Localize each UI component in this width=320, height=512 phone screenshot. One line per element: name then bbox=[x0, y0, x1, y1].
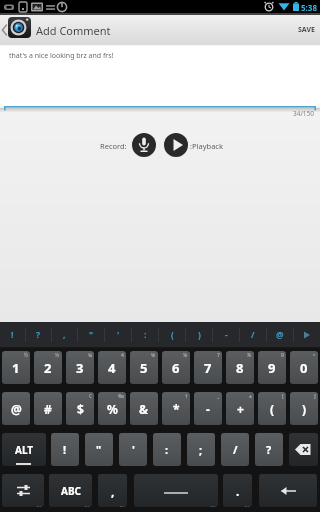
staticText: :Playback bbox=[190, 141, 223, 151]
staticText: - bbox=[206, 401, 210, 417]
staticText: ... bbox=[37, 502, 42, 507]
button[interactable]: @ bbox=[267, 322, 293, 348]
button[interactable]: * bbox=[162, 392, 190, 425]
staticText: + bbox=[237, 401, 244, 417]
button[interactable]: " bbox=[85, 433, 113, 466]
staticText: : bbox=[144, 329, 147, 341]
staticText: ? bbox=[266, 442, 272, 457]
staticText: ! bbox=[11, 329, 14, 341]
button[interactable]: - bbox=[194, 392, 222, 425]
button[interactable]: ? bbox=[255, 433, 283, 466]
button[interactable]: SAVE bbox=[298, 15, 315, 45]
button[interactable]: ... bbox=[2, 474, 44, 507]
staticText: & bbox=[139, 401, 149, 417]
staticText: 0 bbox=[300, 359, 308, 377]
staticText: ... bbox=[85, 502, 90, 507]
button[interactable]: 3 bbox=[66, 351, 94, 384]
button[interactable]: ' bbox=[119, 433, 147, 466]
button[interactable] bbox=[259, 474, 317, 507]
button[interactable]: 6 bbox=[162, 351, 190, 384]
staticText: ) bbox=[198, 329, 201, 341]
button[interactable]: 7 bbox=[194, 351, 222, 384]
button[interactable]: ABC bbox=[49, 474, 92, 507]
staticText: [ bbox=[282, 393, 284, 400]
button[interactable]: that's a nice looking brz and frs! bbox=[0, 46, 320, 106]
button[interactable]: . bbox=[223, 474, 252, 507]
button[interactable]: 2 bbox=[34, 351, 62, 384]
button[interactable]: ; bbox=[187, 433, 215, 466]
staticText: 4 bbox=[108, 359, 116, 377]
staticText: ¢ bbox=[89, 393, 92, 400]
staticText: 34/150 bbox=[293, 109, 315, 118]
staticText: ⅚ bbox=[151, 352, 156, 359]
staticText: ⅞ bbox=[247, 352, 252, 359]
button[interactable]: % bbox=[98, 392, 126, 425]
staticText: ½ bbox=[24, 352, 28, 359]
staticText: that's a nice looking brz and frs! bbox=[9, 51, 114, 61]
button[interactable]: ( bbox=[159, 322, 185, 348]
staticText: # bbox=[44, 401, 52, 417]
staticText: ( bbox=[171, 329, 174, 341]
button[interactable]: - bbox=[213, 322, 239, 348]
button[interactable]: ... bbox=[134, 474, 218, 507]
button[interactable]: , bbox=[98, 474, 127, 507]
button[interactable]: " bbox=[78, 322, 104, 348]
staticText: ... bbox=[120, 502, 125, 507]
button[interactable]: ) bbox=[290, 392, 318, 425]
staticText: 1 bbox=[12, 359, 20, 377]
staticText: SAVE bbox=[298, 25, 315, 35]
staticText: ⅓ bbox=[55, 352, 60, 359]
button[interactable]: ' bbox=[105, 322, 131, 348]
button[interactable]: @ bbox=[2, 392, 30, 425]
button[interactable] bbox=[294, 322, 320, 348]
button[interactable]: 5 bbox=[130, 351, 158, 384]
button[interactable]: + bbox=[226, 392, 254, 425]
staticText: ' bbox=[117, 329, 120, 341]
staticText: . bbox=[236, 483, 240, 499]
staticText: / bbox=[233, 442, 238, 457]
staticText: , bbox=[111, 483, 115, 499]
staticText: ! bbox=[63, 442, 67, 457]
staticText: 4 bbox=[121, 352, 124, 359]
button[interactable]: / bbox=[221, 433, 249, 466]
staticText: " bbox=[89, 329, 94, 341]
button[interactable]: 4 bbox=[98, 351, 126, 384]
staticText: 6 bbox=[172, 359, 180, 377]
button[interactable]: : bbox=[132, 322, 158, 348]
button[interactable]: $ bbox=[66, 392, 94, 425]
button[interactable]: 0 bbox=[290, 351, 318, 384]
staticText: Record: bbox=[100, 141, 127, 151]
button[interactable]: ? bbox=[26, 322, 51, 348]
staticText: % bbox=[107, 401, 118, 417]
staticText: 3 bbox=[76, 359, 84, 377]
button[interactable]: ! bbox=[51, 433, 79, 466]
button[interactable]: 9 bbox=[258, 351, 286, 384]
staticText: 8 bbox=[236, 359, 244, 377]
button[interactable]: , bbox=[52, 322, 77, 348]
button[interactable]: 1 bbox=[2, 351, 30, 384]
button[interactable] bbox=[132, 133, 156, 157]
button[interactable]: 8 bbox=[226, 351, 254, 384]
staticText: ; bbox=[199, 442, 203, 457]
staticText: " bbox=[96, 442, 102, 457]
staticText: 5:38 bbox=[301, 2, 317, 13]
button[interactable]: ALT bbox=[2, 433, 46, 466]
staticText: _ bbox=[217, 393, 220, 400]
button[interactable]: / bbox=[240, 322, 266, 348]
staticText: - bbox=[225, 329, 228, 341]
button[interactable]: ( bbox=[258, 392, 286, 425]
button[interactable] bbox=[164, 133, 188, 157]
staticText: † bbox=[185, 393, 188, 400]
button[interactable] bbox=[8, 17, 31, 38]
button[interactable]: ! bbox=[0, 322, 25, 348]
button[interactable]: # bbox=[34, 392, 62, 425]
staticText: 9 bbox=[281, 352, 284, 359]
button[interactable]: ) bbox=[186, 322, 212, 348]
staticText: @ bbox=[276, 329, 284, 341]
button[interactable]: & bbox=[130, 392, 158, 425]
staticText: ABC bbox=[61, 484, 81, 498]
staticText: ¾ bbox=[88, 352, 92, 359]
button[interactable]: : bbox=[153, 433, 181, 466]
button[interactable] bbox=[289, 433, 318, 466]
staticText: * bbox=[173, 401, 180, 417]
